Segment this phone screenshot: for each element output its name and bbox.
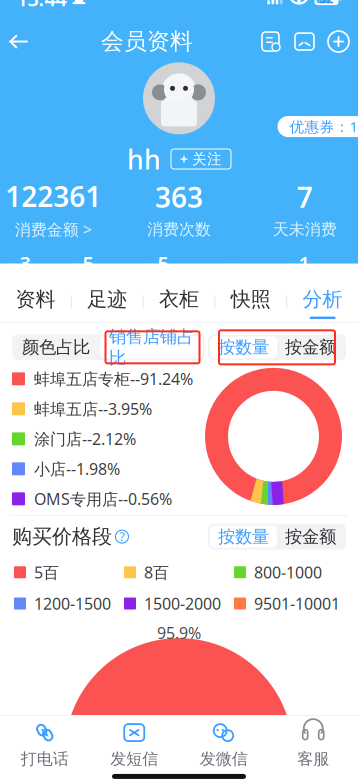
staticText: 按金额 bbox=[285, 526, 336, 547]
staticText: 发微信 bbox=[200, 749, 248, 769]
staticText: 客服 bbox=[297, 749, 329, 769]
button[interactable]: 资料 bbox=[0, 282, 71, 322]
staticText: 购买价格段 bbox=[12, 524, 112, 549]
staticText: 发短信 bbox=[110, 749, 158, 769]
button[interactable]: Help bbox=[112, 527, 132, 547]
staticText: 打电话 bbox=[21, 749, 69, 769]
staticText: 0.57 bbox=[228, 277, 263, 300]
button[interactable]: 快照 bbox=[215, 282, 286, 322]
staticText: 800-1000 bbox=[254, 562, 322, 583]
staticText: 8百 bbox=[144, 562, 169, 583]
staticText: 天未消费 bbox=[273, 219, 337, 239]
button[interactable]: Photos bbox=[287, 21, 321, 61]
button[interactable]: 关注 bbox=[171, 149, 231, 169]
button[interactable]: 按数量 bbox=[210, 336, 277, 358]
button[interactable]: 发短信 bbox=[89, 716, 179, 774]
staticText: 122361 bbox=[5, 177, 101, 215]
staticText: 1200-1500 bbox=[34, 593, 111, 614]
button[interactable]: Back bbox=[0, 19, 40, 63]
staticText: 52.0 bbox=[72, 277, 107, 300]
staticText: 足迹 bbox=[87, 287, 127, 312]
staticText: 快照 bbox=[231, 287, 271, 312]
staticText: OMS专用店--0.56% bbox=[34, 488, 172, 509]
button[interactable]: 发微信 bbox=[179, 716, 268, 774]
button[interactable]: 打电话 bbox=[0, 716, 89, 774]
button[interactable]: 颜色占比 bbox=[12, 334, 100, 360]
staticText: 95.9% bbox=[157, 622, 201, 643]
staticText: 1500-2000 bbox=[144, 593, 221, 614]
staticText: 分析 bbox=[303, 287, 343, 312]
staticText: 5 bbox=[82, 250, 93, 277]
staticText: 5百 bbox=[34, 562, 59, 583]
staticText: 7 bbox=[297, 178, 313, 215]
staticText: 销售店铺占比 bbox=[109, 326, 194, 369]
button[interactable]: 销售店铺占比 bbox=[100, 336, 205, 358]
staticText: 13739.06 bbox=[142, 277, 217, 300]
staticText: 关注 bbox=[192, 150, 222, 168]
staticText: 蚌埠五店--3.95% bbox=[34, 398, 152, 419]
button[interactable]: 按金额 bbox=[277, 524, 344, 550]
button[interactable]: 按数量 bbox=[210, 526, 277, 548]
staticText: 52 bbox=[319, 0, 333, 6]
staticText: 363 bbox=[155, 178, 203, 215]
staticText: R bbox=[8, 259, 16, 276]
button[interactable]: 优惠券：1 bbox=[277, 116, 358, 137]
staticText: 5 bbox=[157, 250, 168, 277]
staticText: 7.0 bbox=[8, 277, 33, 300]
staticText: 9501-10001 bbox=[254, 593, 340, 614]
button[interactable]: 按金额 bbox=[277, 334, 344, 360]
staticText: 小店--1.98% bbox=[34, 458, 120, 479]
staticText: 会员资料 bbox=[101, 28, 193, 55]
staticText: D bbox=[228, 259, 238, 276]
staticText: 按数量 bbox=[218, 337, 269, 358]
staticText: M bbox=[142, 259, 154, 276]
staticText: 消费次数 bbox=[147, 219, 211, 239]
staticText: 优惠券：1 bbox=[289, 117, 357, 136]
staticText: ? bbox=[119, 529, 124, 545]
staticText: 1 bbox=[298, 250, 309, 277]
staticText: 3 bbox=[19, 250, 30, 277]
staticText: 13:44 bbox=[16, 0, 66, 12]
button[interactable]: 衣柜 bbox=[144, 282, 214, 322]
staticText: 衣柜 bbox=[159, 287, 199, 312]
staticText: 1.0 bbox=[290, 277, 315, 300]
staticText: I bbox=[290, 259, 295, 276]
button[interactable]: Add bbox=[321, 21, 355, 61]
button[interactable]: Records bbox=[253, 21, 287, 61]
staticText: 颜色占比 bbox=[22, 337, 90, 358]
staticText: 消费金额 > bbox=[15, 219, 92, 240]
staticText: 按金额 bbox=[285, 337, 336, 358]
button[interactable]: 分析 bbox=[287, 282, 358, 322]
staticText: F bbox=[72, 259, 79, 276]
button[interactable]: 足迹 bbox=[72, 282, 143, 322]
staticText: 资料 bbox=[15, 287, 55, 312]
staticText: 蚌埠五店专柜--91.24% bbox=[34, 368, 193, 389]
button[interactable]: 122361 bbox=[0, 177, 116, 240]
staticText: hh bbox=[127, 141, 161, 177]
staticText: 涂门店--2.12% bbox=[34, 428, 136, 449]
staticText: 按数量 bbox=[218, 526, 269, 547]
button[interactable]: 客服 bbox=[268, 716, 358, 774]
